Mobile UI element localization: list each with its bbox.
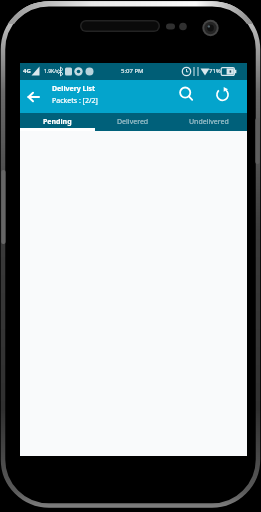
- button[interactable]: Undelivered: [171, 113, 247, 131]
- button[interactable]: Pending: [20, 113, 95, 131]
- staticText: 4G: [23, 67, 31, 75]
- button[interactable]: [215, 86, 231, 102]
- button[interactable]: Delivered: [95, 113, 171, 131]
- staticText: 5:07 PM: [121, 67, 144, 75]
- staticText: Delivery List: [52, 84, 96, 94]
- button[interactable]: [25, 89, 43, 105]
- staticText: Undelivered: [189, 117, 229, 127]
- staticText: Packets : [2/2]: [52, 96, 98, 106]
- staticText: Delivered: [117, 117, 149, 127]
- staticText: 71%: [209, 67, 221, 75]
- staticText: Pending: [43, 117, 72, 127]
- staticText: 1.9K/s: [44, 68, 59, 75]
- button[interactable]: [178, 86, 194, 102]
